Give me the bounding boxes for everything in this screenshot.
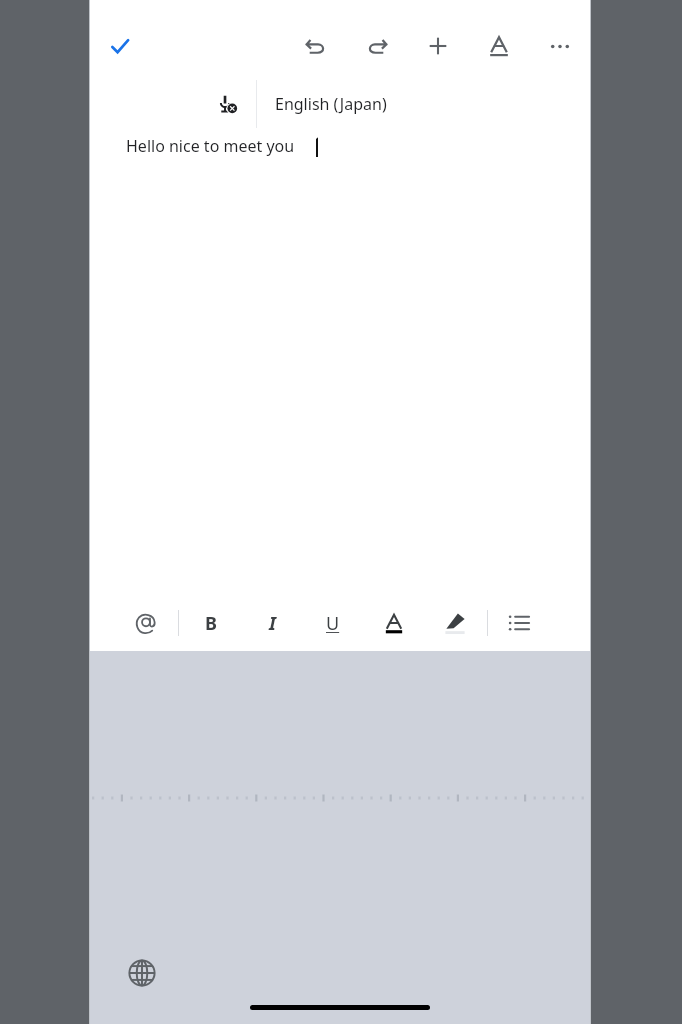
button[interactable]: Redo [355,24,399,68]
button[interactable]: English (Japan) [257,80,405,128]
button[interactable]: Underline [311,601,355,645]
button[interactable]: Insert [416,24,460,68]
staticText: I [269,611,276,636]
button[interactable]: Mention [124,601,168,645]
button[interactable]: Text color [372,601,416,645]
staticText: B [205,611,217,636]
button[interactable]: More options [538,24,582,68]
button[interactable]: Microphone off [197,80,256,128]
staticText: Hello nice to meet you [126,135,295,157]
button[interactable]: Formatting [477,24,521,68]
button[interactable]: Undo [294,24,338,68]
button[interactable]: Change language [120,951,164,995]
button[interactable]: Bold [189,601,233,645]
staticText: U [326,611,340,636]
button[interactable]: Bulleted list [497,601,541,645]
button[interactable]: Italic [250,601,294,645]
staticText: English (Japan) [275,93,387,115]
button[interactable]: Highlight [433,601,477,645]
button[interactable]: Done [98,24,142,68]
